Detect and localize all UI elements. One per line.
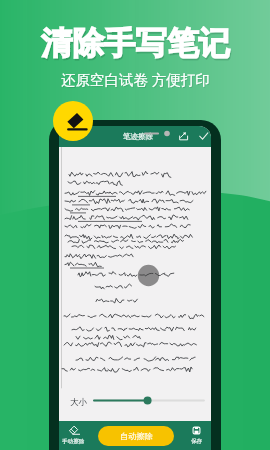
staticText: 大小 — [70, 397, 87, 408]
button[interactable]: 自动擦除 — [98, 426, 174, 446]
button[interactable]: Eraser — [53, 101, 93, 141]
staticText: 清除手写笔记 — [42, 26, 231, 66]
staticText: 自动擦除 — [120, 431, 153, 441]
staticText: 笔迹擦除 — [123, 132, 153, 141]
button[interactable]: 手动擦除 — [60, 421, 87, 450]
button[interactable]: 保存 — [183, 421, 210, 450]
staticText: 还原空白试卷 方便打印 — [62, 70, 211, 90]
staticText: 手动擦除 — [62, 438, 85, 445]
button[interactable]: Done — [198, 130, 210, 142]
staticText: 清除手写笔记 — [41, 24, 230, 64]
button[interactable]: Share — [178, 130, 190, 142]
staticText: 还原空白试卷 方便打印 — [61, 69, 210, 89]
button[interactable]: Brush size — [94, 393, 204, 413]
staticText: 保存 — [191, 438, 203, 445]
